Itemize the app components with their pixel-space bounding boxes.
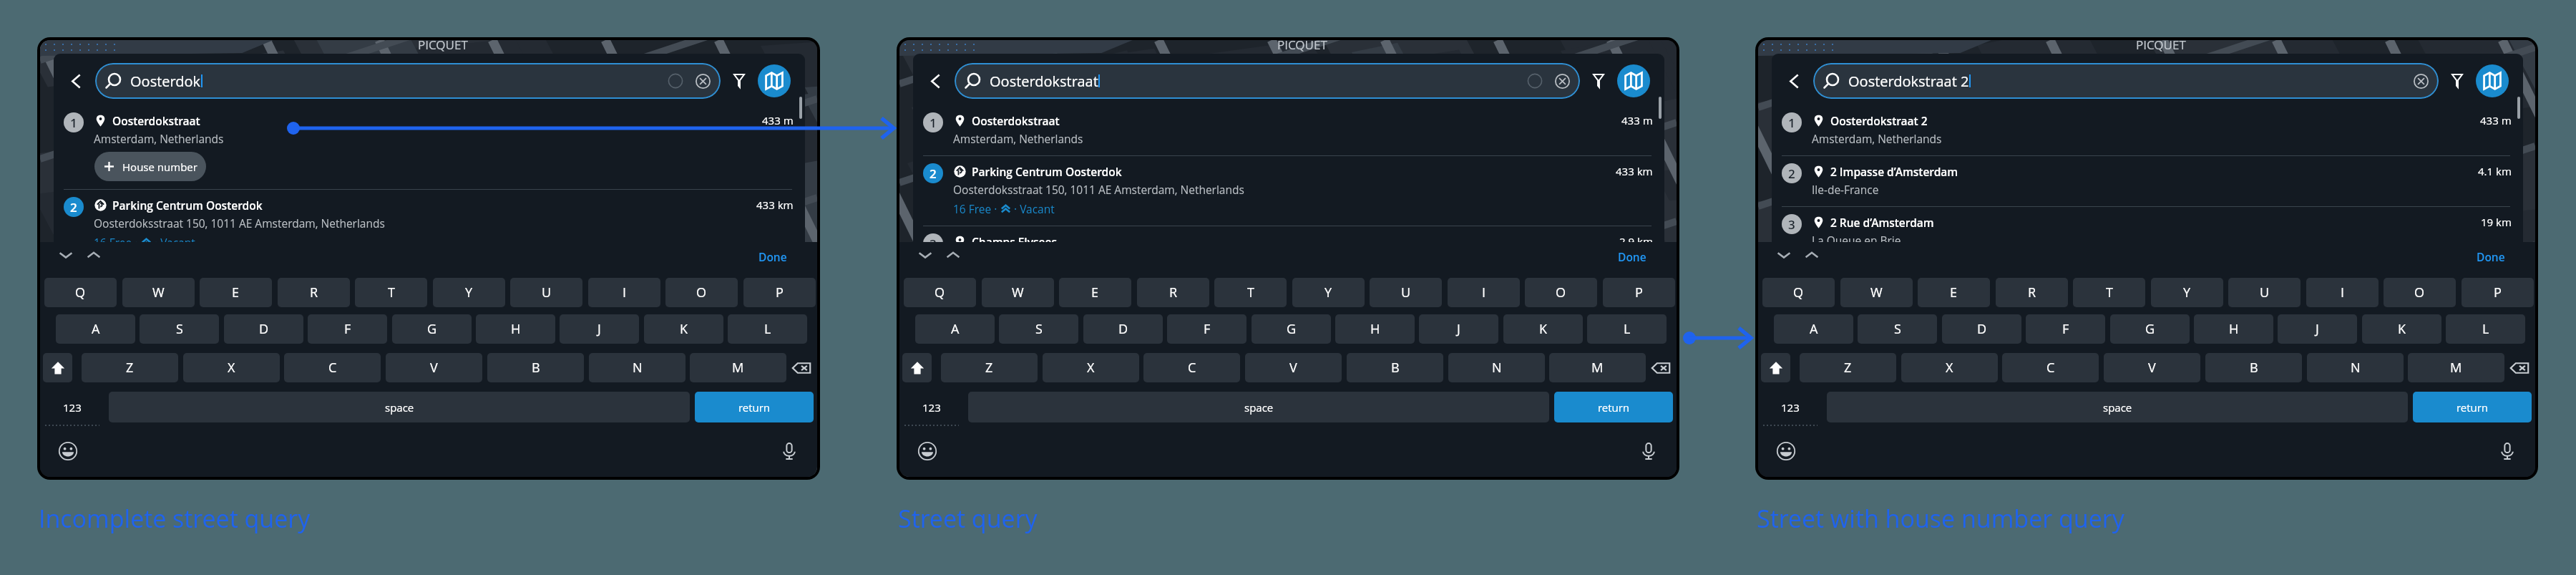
button[interactable]: 123 bbox=[45, 392, 99, 422]
button[interactable]: Y bbox=[2151, 278, 2223, 307]
button[interactable]: D bbox=[1083, 314, 1163, 344]
button[interactable]: B bbox=[1347, 353, 1443, 382]
button[interactable]: F bbox=[2026, 314, 2105, 344]
button[interactable]: X bbox=[183, 353, 280, 382]
button[interactable]: 3 bbox=[1772, 207, 2523, 257]
button[interactable]: R bbox=[1137, 278, 1209, 307]
button[interactable]: Q bbox=[44, 278, 117, 307]
button[interactable]: Shift bbox=[1761, 353, 1790, 382]
button[interactable]: X bbox=[1043, 353, 1139, 382]
button[interactable]: K bbox=[1503, 314, 1583, 344]
button[interactable]: C bbox=[2002, 353, 2099, 382]
button[interactable]: Previous field bbox=[914, 243, 937, 266]
button[interactable]: O bbox=[1525, 278, 1597, 307]
button[interactable]: 123 bbox=[1763, 392, 1818, 422]
button[interactable]: Previous field bbox=[1772, 243, 1795, 266]
button[interactable]: N bbox=[589, 353, 686, 382]
button[interactable]: W bbox=[1840, 278, 1913, 307]
button[interactable]: G bbox=[2110, 314, 2190, 344]
button[interactable]: Q bbox=[904, 278, 976, 307]
button[interactable]: Oosterdokstraat bbox=[955, 63, 1580, 99]
button[interactable]: R bbox=[1996, 278, 2068, 307]
button[interactable]: N bbox=[2307, 353, 2404, 382]
button[interactable]: H bbox=[2194, 314, 2273, 344]
button[interactable]: Voice input bbox=[2496, 440, 2519, 463]
button[interactable]: Shift bbox=[902, 353, 932, 382]
button[interactable]: R bbox=[278, 278, 350, 307]
button[interactable]: Backspace bbox=[2505, 353, 2534, 382]
button[interactable]: E bbox=[1059, 278, 1131, 307]
button[interactable]: Next field bbox=[942, 243, 965, 266]
button[interactable]: Filter bbox=[1586, 68, 1611, 94]
button[interactable]: Oosterdok bbox=[95, 63, 721, 99]
button[interactable]: V bbox=[386, 353, 482, 382]
button[interactable]: K bbox=[644, 314, 723, 344]
button[interactable]: Show map bbox=[758, 64, 791, 97]
button[interactable]: P bbox=[1603, 278, 1675, 307]
button[interactable]: House number bbox=[94, 152, 206, 181]
button[interactable]: S bbox=[140, 314, 219, 344]
button[interactable]: Clear search bbox=[691, 69, 715, 93]
button[interactable]: Q bbox=[1762, 278, 1835, 307]
button[interactable]: S bbox=[1858, 314, 1937, 344]
button[interactable]: C bbox=[1143, 353, 1240, 382]
button[interactable]: I bbox=[1448, 278, 1520, 307]
button[interactable]: return bbox=[695, 392, 814, 422]
button[interactable]: 123 bbox=[904, 392, 959, 422]
button[interactable]: Back bbox=[60, 63, 92, 99]
button[interactable]: 3 bbox=[913, 226, 1664, 276]
button[interactable]: L bbox=[2446, 314, 2525, 344]
button[interactable]: Y bbox=[1292, 278, 1365, 307]
button[interactable]: V bbox=[2104, 353, 2200, 382]
button[interactable]: B bbox=[2205, 353, 2302, 382]
button[interactable]: Filter bbox=[2444, 68, 2470, 94]
button[interactable]: Z bbox=[82, 353, 178, 382]
button[interactable]: U bbox=[2228, 278, 2301, 307]
button[interactable]: D bbox=[224, 314, 303, 344]
button[interactable]: F bbox=[308, 314, 387, 344]
button[interactable]: B bbox=[487, 353, 584, 382]
button[interactable]: return bbox=[2413, 392, 2532, 422]
button[interactable]: Voice input bbox=[778, 440, 801, 463]
button[interactable]: Clear search bbox=[1551, 69, 1574, 93]
button[interactable]: O bbox=[2384, 278, 2456, 307]
button[interactable]: G bbox=[1252, 314, 1331, 344]
button[interactable]: Show map bbox=[1617, 64, 1650, 97]
button[interactable]: A bbox=[915, 314, 995, 344]
button[interactable]: L bbox=[1587, 314, 1667, 344]
button[interactable]: W bbox=[982, 278, 1054, 307]
button[interactable]: 1 bbox=[1772, 105, 2523, 155]
button[interactable]: Next field bbox=[1800, 243, 1823, 266]
button[interactable]: return bbox=[1554, 392, 1673, 422]
button[interactable]: 1 bbox=[913, 105, 1664, 155]
button[interactable]: Voice input bbox=[1637, 440, 1660, 463]
button[interactable]: Shift bbox=[43, 353, 72, 382]
button[interactable]: Oosterdokstraat 2 bbox=[1813, 63, 2439, 99]
button[interactable]: P bbox=[743, 278, 816, 307]
button[interactable]: F bbox=[1167, 314, 1246, 344]
button[interactable]: Next field bbox=[82, 243, 105, 266]
button[interactable]: Backspace bbox=[1646, 353, 1675, 382]
button[interactable]: E bbox=[200, 278, 272, 307]
button[interactable]: Back bbox=[919, 63, 951, 99]
button[interactable]: 2 bbox=[1772, 156, 2523, 206]
button[interactable]: M bbox=[2408, 353, 2504, 382]
button[interactable]: J bbox=[560, 314, 639, 344]
button[interactable]: Previous field bbox=[54, 243, 77, 266]
button[interactable]: C bbox=[284, 353, 381, 382]
button[interactable]: W bbox=[122, 278, 195, 307]
button[interactable]: D bbox=[1942, 314, 2021, 344]
button[interactable]: V bbox=[1245, 353, 1342, 382]
button[interactable]: U bbox=[510, 278, 582, 307]
button[interactable]: U bbox=[1370, 278, 1442, 307]
button[interactable]: space bbox=[109, 392, 690, 422]
button[interactable]: 2 bbox=[913, 156, 1664, 226]
button[interactable]: 2 bbox=[54, 190, 805, 259]
button[interactable]: Backspace bbox=[787, 353, 816, 382]
button[interactable]: Show map bbox=[2476, 64, 2509, 97]
button[interactable]: Back bbox=[1778, 63, 1810, 99]
button[interactable]: Emoji keyboard bbox=[57, 440, 79, 463]
button[interactable]: I bbox=[588, 278, 660, 307]
button[interactable]: A bbox=[1774, 314, 1853, 344]
button[interactable]: T bbox=[355, 278, 427, 307]
